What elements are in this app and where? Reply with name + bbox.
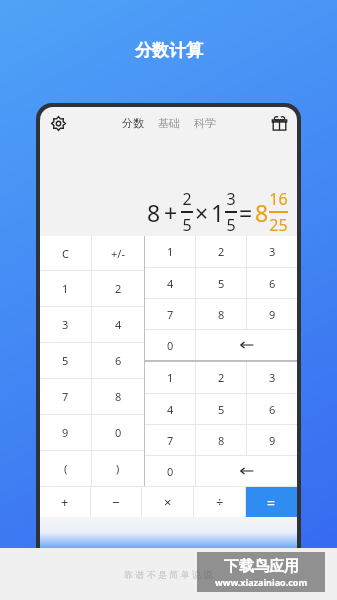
staticText: 2 [182,188,192,210]
button[interactable]: 分数 [120,112,146,134]
staticText: − [112,493,120,511]
staticText: 8 [147,197,161,228]
staticText: 1 [211,197,225,228]
staticText: 7 [167,433,174,448]
staticText: 25 [269,214,288,236]
staticText: 靠 谱 不 是 简 单 说 说 [124,568,213,580]
staticText: 基础 [158,116,180,130]
button[interactable]: 0 [92,415,144,450]
button[interactable]: 科学 [192,112,218,134]
button[interactable]: 3 [247,236,297,267]
button[interactable]: 1 [145,362,195,393]
button[interactable]: 8 [92,379,144,414]
button[interactable]: 7 [145,299,195,329]
staticText: = [267,493,276,512]
button[interactable]: ÷ [194,487,245,517]
staticText: +/- [111,246,125,261]
staticText: × [164,493,172,511]
button[interactable]: 6 [247,394,297,424]
staticText: 7 [167,307,174,322]
button[interactable]: 9 [40,415,91,450]
button[interactable]: 3 [40,307,91,342]
button[interactable]: + [40,487,90,517]
staticText: 4 [167,276,174,291]
button[interactable]: 8 [196,299,246,329]
button[interactable]: 3 [247,362,297,393]
button[interactable]: 5 [40,343,91,378]
staticText: 7 [62,389,69,404]
staticText: C [62,246,69,261]
button[interactable]: C [40,236,91,270]
staticText: ( [64,461,68,476]
button[interactable]: 9 [247,425,297,455]
staticText: 3 [269,370,276,385]
staticText: 5 [226,214,236,236]
staticText: 16 [269,188,288,210]
staticText: 4 [167,402,174,417]
button[interactable]: 9 [247,299,297,329]
button[interactable]: 7 [40,379,91,414]
button[interactable]: 2 [196,236,246,267]
button[interactable]: 6 [92,343,144,378]
button[interactable]: 4 [145,394,195,424]
staticText: + [164,197,178,228]
staticText: 9 [269,307,276,322]
staticText: 下载鸟应用 [224,557,299,576]
button[interactable]: − [91,487,141,517]
staticText: 0 [167,338,174,353]
button[interactable]: 1 [40,271,91,306]
button[interactable]: 0 [145,456,195,486]
staticText: 6 [115,353,122,368]
staticText: 5 [218,402,225,417]
button[interactable]: × [142,487,193,517]
button[interactable]: 8 [196,425,246,455]
staticText: 3 [269,244,276,259]
staticText: 3 [226,188,236,210]
staticText: 科学 [194,116,216,130]
staticText: 2 [218,370,225,385]
staticText: × [195,197,209,228]
staticText: 5 [218,276,225,291]
button[interactable]: 5 [196,394,246,424]
button[interactable]: = [246,487,297,517]
staticText: + [61,493,69,511]
button[interactable]: Gift [268,112,290,134]
button[interactable]: Settings [47,112,69,134]
staticText: 6 [269,276,276,291]
button[interactable]: ) [92,451,144,486]
staticText: 9 [269,433,276,448]
staticText: 2 [218,244,225,259]
staticText: 5 [182,214,192,236]
button[interactable]: 1 [145,236,195,267]
button[interactable]: 2 [196,362,246,393]
staticText: ) [116,461,120,476]
button[interactable]: 基础 [156,112,182,134]
staticText: 5 [62,353,69,368]
button[interactable]: +/- [92,236,144,270]
staticText: = [239,197,253,228]
button[interactable]: 6 [247,268,297,298]
staticText: 8 [218,433,225,448]
button[interactable]: 4 [145,268,195,298]
button[interactable]: Backspace [196,456,297,486]
button[interactable]: Backspace [196,330,297,360]
staticText: 6 [269,402,276,417]
staticText: 1 [167,370,174,385]
staticText: 分数计算 [135,40,203,61]
staticText: 8 [218,307,225,322]
staticText: 4 [115,317,122,332]
staticText: 分数 [122,116,144,130]
staticText: 9 [62,425,69,440]
button[interactable]: 7 [145,425,195,455]
staticText: www.xiazainiao.com [215,576,308,588]
staticText: 0 [167,464,174,479]
button[interactable]: ( [40,451,91,486]
staticText: 8 [255,197,269,228]
button[interactable]: 0 [145,330,195,360]
button[interactable]: 2 [92,271,144,306]
button[interactable]: 5 [196,268,246,298]
staticText: ÷ [216,493,224,511]
staticText: 3 [62,317,69,332]
button[interactable]: 4 [92,307,144,342]
staticText: 8 [115,389,122,404]
